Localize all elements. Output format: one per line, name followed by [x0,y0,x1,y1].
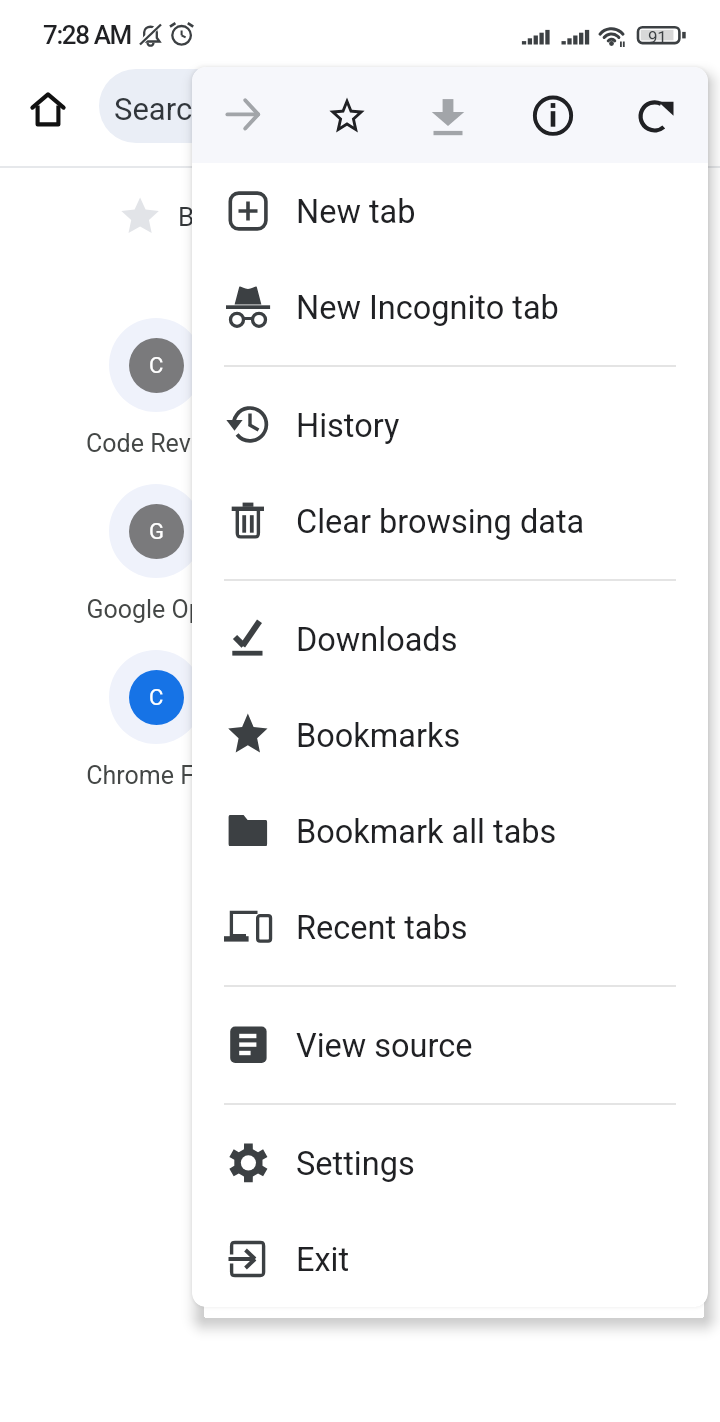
staticText: View source [296,1027,473,1065]
button[interactable]: Downloads [192,591,708,687]
staticText: Bookmarks [296,717,461,755]
staticText: Settings [296,1145,415,1183]
staticText: 91 [648,27,667,47]
button[interactable]: Page info [502,67,604,163]
staticText: Search or type URL [114,91,376,127]
staticText: Downloads [296,621,458,659]
button[interactable]: Reload page [605,67,707,163]
staticText: Chrome Feature Status [86,761,226,790]
staticText: Clear browsing data [296,503,585,541]
staticText: Google Open Source [86,595,226,624]
staticText: 7:28 AM [43,20,131,50]
button[interactable]: Search or type URL [99,69,659,143]
staticText: New Incognito tab [296,289,559,327]
button[interactable]: Exit [192,1211,708,1307]
staticText: C [149,353,164,379]
button[interactable]: Recent tabs [192,879,708,975]
button[interactable]: View source [192,997,708,1093]
button[interactable]: C [66,318,246,468]
staticText: Code Review [86,429,226,458]
staticText: Bookmarks [178,202,310,232]
button[interactable]: Settings [192,1115,708,1211]
button[interactable]: History [192,377,708,473]
button[interactable]: Bookmark all tabs [192,783,708,879]
staticText: History [296,407,400,445]
button[interactable]: Bookmark this page [296,67,398,163]
button[interactable]: C [66,650,246,800]
staticText: New tab [296,193,416,231]
staticText: G [149,519,164,545]
button[interactable]: New Incognito tab [192,259,708,355]
button[interactable]: Download page [397,67,499,163]
staticText: Exit [296,1241,350,1279]
button[interactable]: Home [24,86,72,134]
staticText: Bookmark all tabs [296,813,557,851]
button[interactable]: New tab [192,163,708,259]
button[interactable]: G [66,484,246,634]
button[interactable]: Bookmarks [108,185,310,231]
staticText: C [149,685,164,711]
staticText: Recent tabs [296,909,468,947]
button[interactable]: Bookmarks [192,687,708,783]
button[interactable]: Clear browsing data [192,473,708,569]
button[interactable]: Forward [192,67,294,163]
